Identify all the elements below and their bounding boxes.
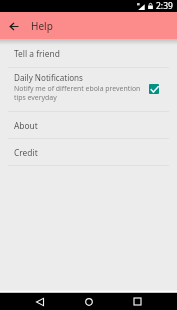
button[interactable]: Recents — [117, 293, 158, 310]
button[interactable]: Back — [19, 293, 60, 310]
button[interactable]: Back — [5, 17, 23, 35]
button[interactable]: Daily Notifications — [0, 68, 177, 111]
staticText: 2:39 — [156, 0, 173, 12]
button[interactable]: Tell a friend — [0, 39, 177, 67]
button[interactable]: Daily notifications toggle — [149, 84, 159, 94]
staticText: Tell a friend — [14, 48, 60, 59]
button[interactable]: Credit — [0, 139, 177, 165]
staticText: Credit — [14, 147, 38, 158]
staticText: Daily Notifications — [14, 72, 83, 83]
button[interactable]: Home — [60, 293, 117, 310]
staticText: Notify me of different ebola prevention … — [14, 84, 148, 102]
staticText: Help — [31, 19, 53, 33]
button[interactable]: About — [0, 112, 177, 138]
staticText: About — [14, 120, 38, 131]
